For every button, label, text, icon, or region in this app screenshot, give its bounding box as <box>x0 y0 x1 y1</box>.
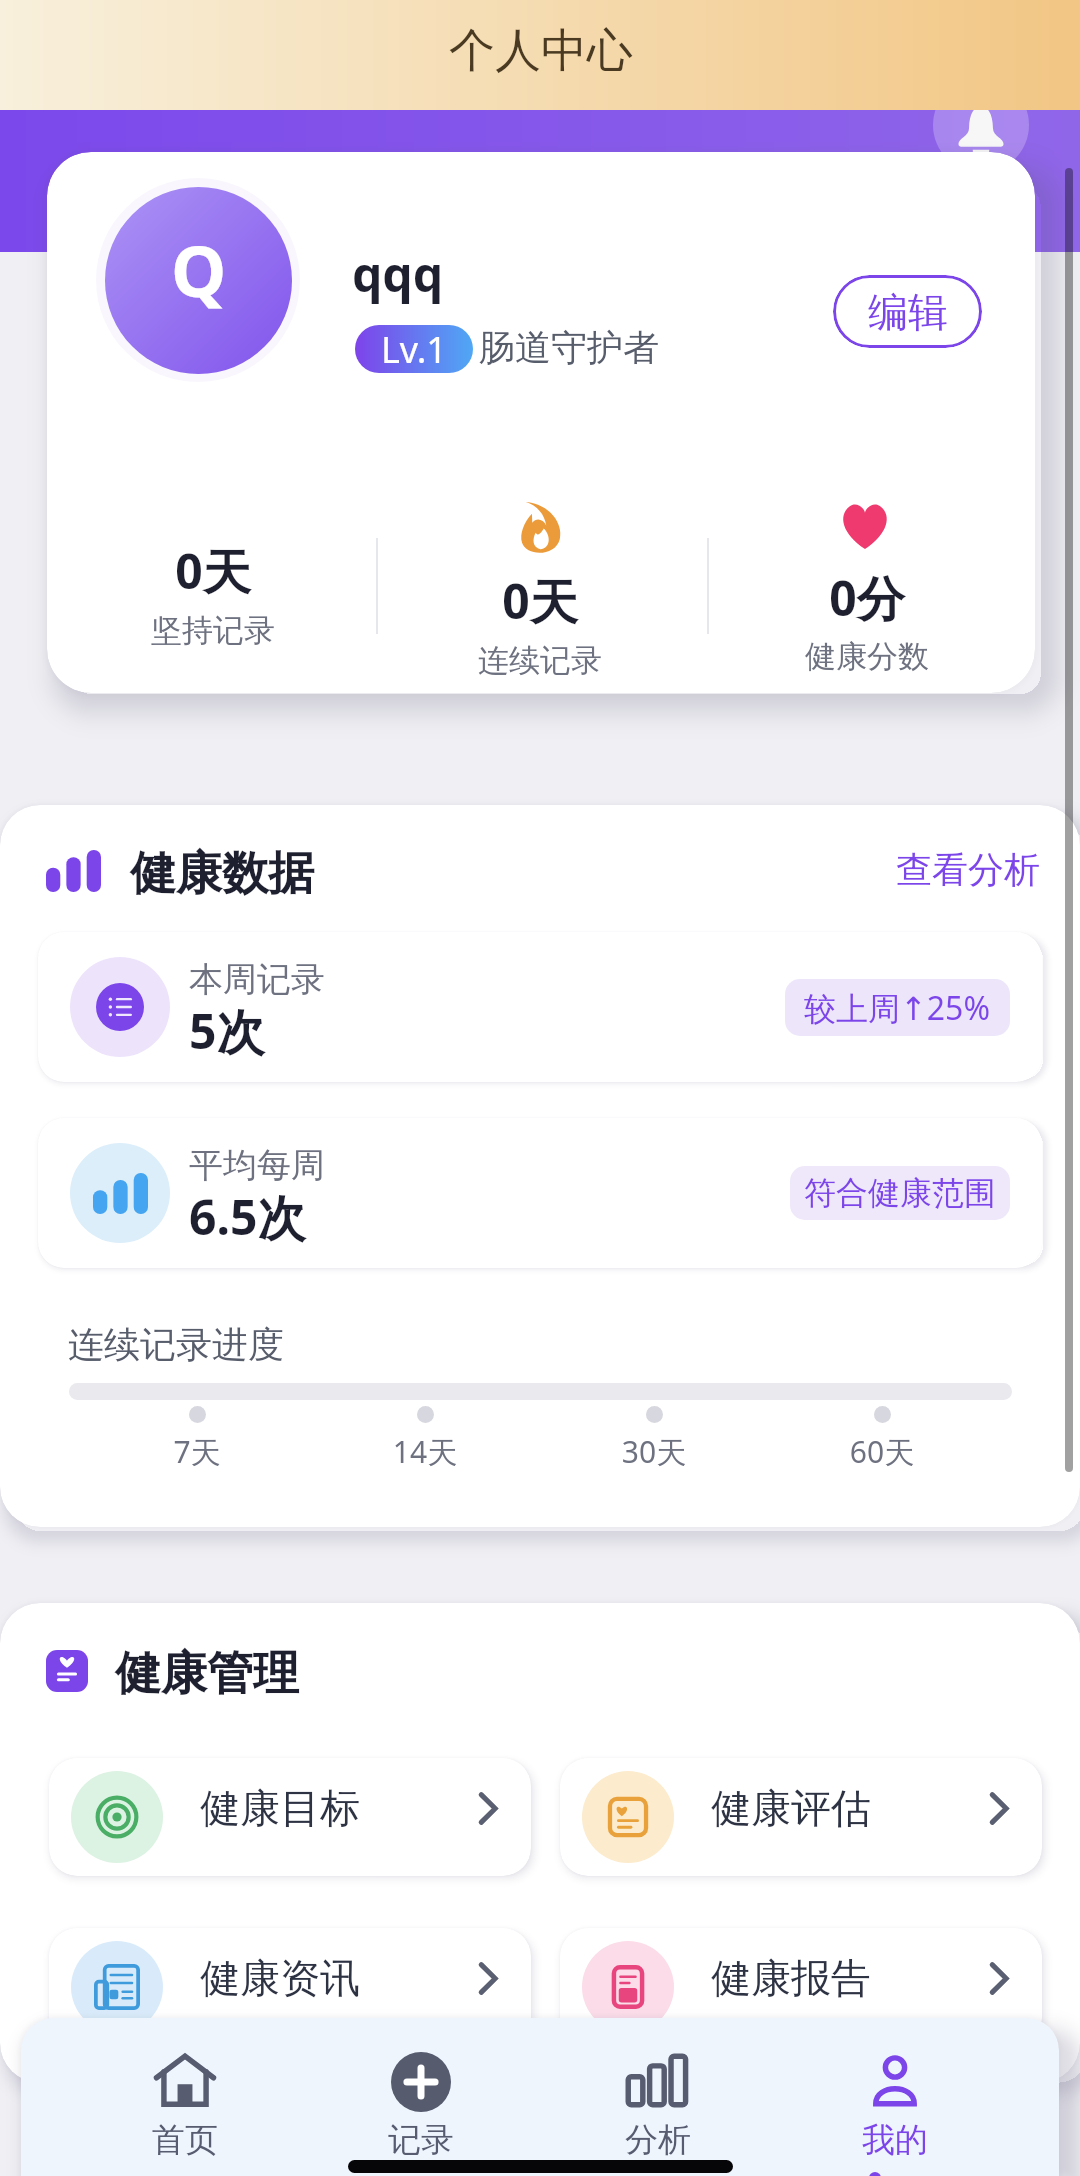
button[interactable]: 首页 <box>95 2018 275 2176</box>
staticText: 编辑 <box>868 287 948 337</box>
staticText: 6.5次 <box>189 1184 306 1250</box>
button[interactable]: 健康目标 <box>49 1758 531 1876</box>
staticText: 健康资讯 <box>200 1953 360 2003</box>
staticText: 0天 <box>47 538 463 604</box>
staticText: 我的 <box>805 2119 985 2161</box>
button[interactable]: 记录 <box>331 2018 511 2176</box>
staticText: 0分 <box>617 565 1035 631</box>
staticText: 30天 <box>404 1431 904 1472</box>
staticText: 60天 <box>632 1431 1080 1472</box>
staticText: 健康评估 <box>711 1783 871 1833</box>
staticText: 平均每周 <box>189 1144 325 1187</box>
staticText: 健康目标 <box>200 1783 360 1833</box>
button[interactable]: 分析 <box>568 2018 748 2176</box>
button[interactable]: 健康资讯 <box>49 1928 531 2046</box>
staticText: 14天 <box>175 1431 675 1472</box>
staticText: 分析 <box>568 2119 748 2161</box>
staticText: 健康管理 <box>115 1645 299 1703</box>
staticText: Lv.1 <box>381 325 447 373</box>
button[interactable]: 平均每周 <box>38 1118 1042 1268</box>
staticText: 健康报告 <box>711 1953 871 2003</box>
staticText: Q <box>171 222 227 317</box>
staticText: 首页 <box>95 2119 275 2161</box>
staticText: 符合健康范围 <box>804 1173 996 1213</box>
staticText: 查看分析 <box>896 847 1040 892</box>
button[interactable]: 本周记录 <box>38 932 1042 1082</box>
staticText: 0天 <box>290 568 790 634</box>
button[interactable]: 编辑 <box>833 275 982 348</box>
button[interactable]: 我的 <box>805 2018 985 2176</box>
staticText: 连续记录 <box>290 641 790 680</box>
staticText: qqq <box>352 241 444 306</box>
button[interactable]: 健康评估 <box>560 1758 1042 1876</box>
staticText: 较上周↑25% <box>804 986 991 1030</box>
button[interactable]: 查看分析 <box>890 841 1046 898</box>
staticText: 个人中心 <box>449 22 633 80</box>
staticText: 本周记录 <box>189 958 325 1001</box>
staticText: 5次 <box>189 998 265 1064</box>
staticText: 肠道守护者 <box>479 325 659 370</box>
staticText: 健康数据 <box>130 845 314 903</box>
staticText: 坚持记录 <box>47 611 463 650</box>
staticText: 连续记录进度 <box>68 1322 284 1367</box>
button[interactable]: 健康报告 <box>560 1928 1042 2046</box>
staticText: 7天 <box>0 1431 447 1472</box>
button[interactable]: Notifications <box>933 77 1029 173</box>
staticText: 健康分数 <box>617 637 1035 676</box>
staticText: 记录 <box>331 2119 511 2161</box>
